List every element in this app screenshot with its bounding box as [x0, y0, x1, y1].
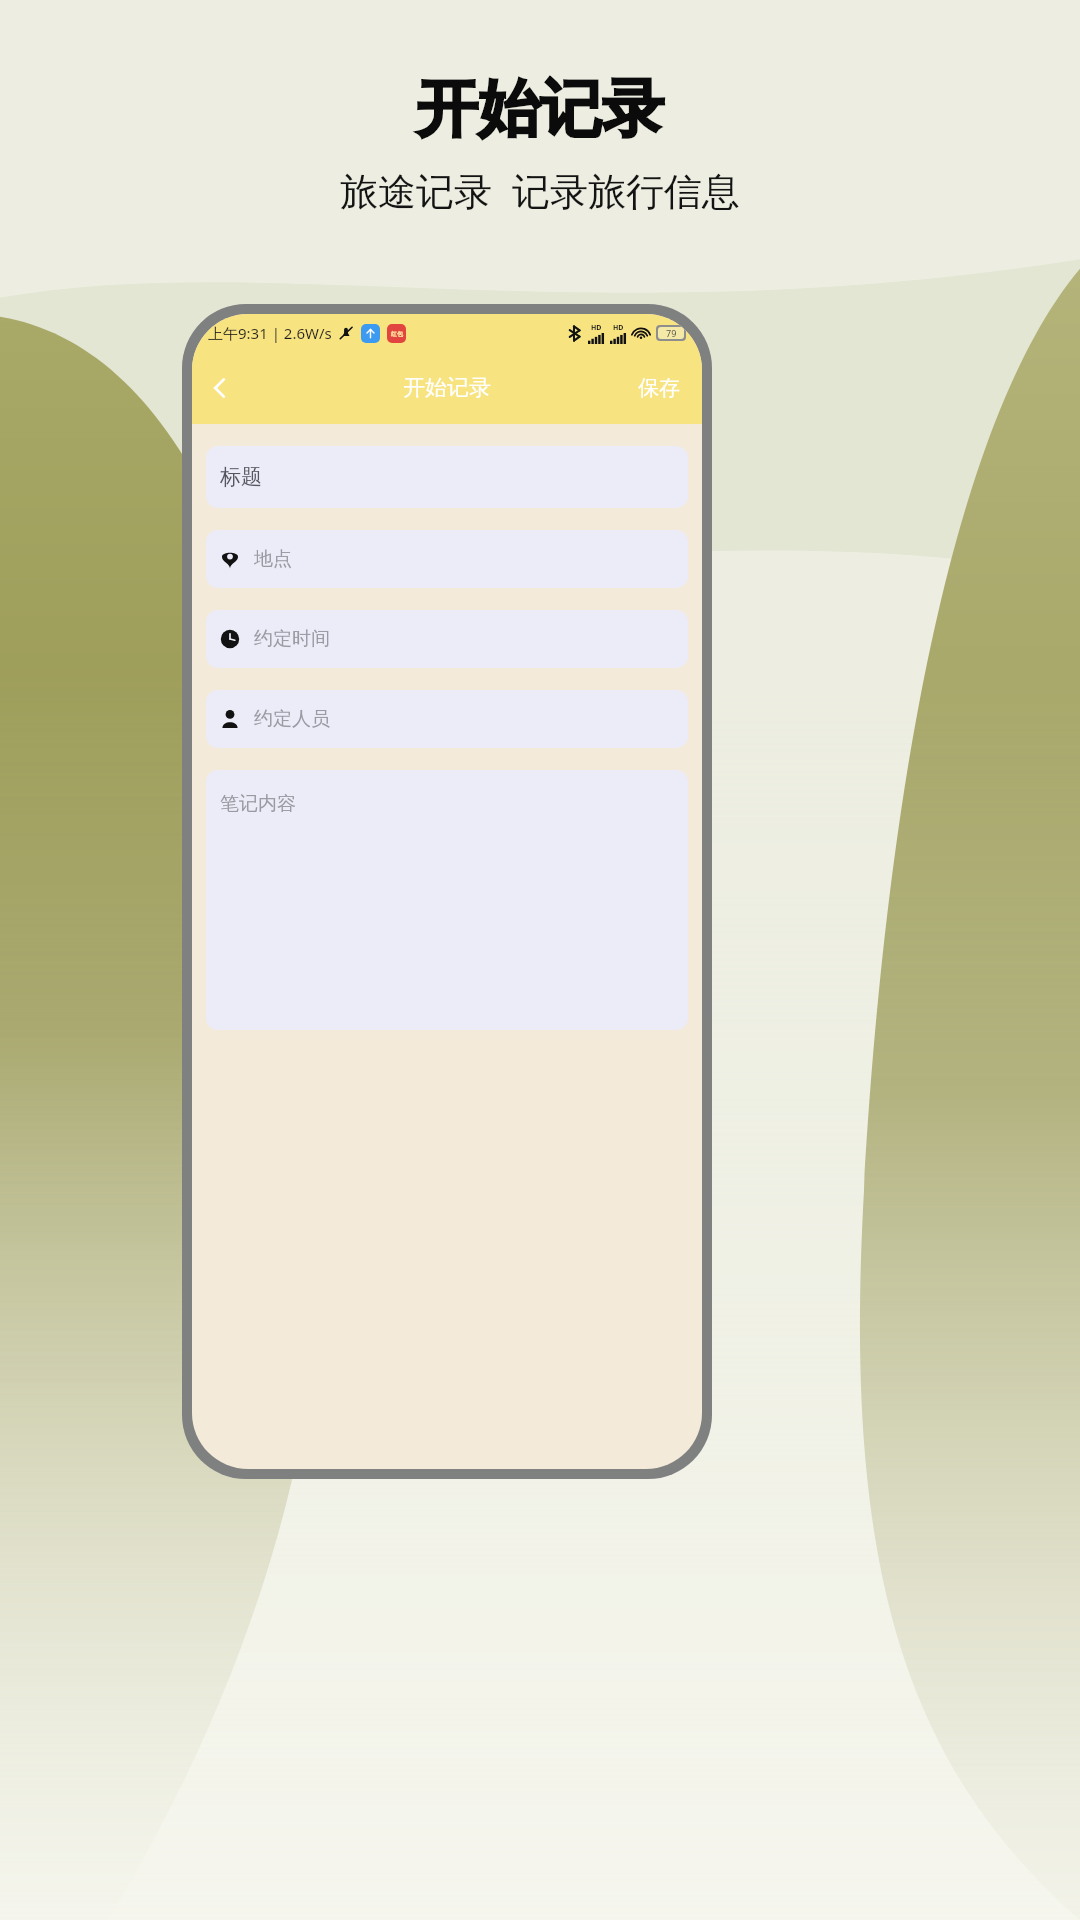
button[interactable]: 返回: [192, 360, 248, 416]
button[interactable]: 保存: [616, 359, 702, 417]
staticText: HD: [591, 323, 602, 333]
staticText: HD: [613, 323, 624, 333]
staticText: 保存: [638, 375, 680, 401]
button[interactable]: 约定人员: [206, 690, 688, 748]
staticText: 笔记内容: [220, 792, 296, 816]
button[interactable]: 标题: [206, 446, 688, 508]
staticText: 旅途记录 记录旅行信息: [0, 164, 1080, 216]
staticText: 约定时间: [254, 627, 330, 651]
staticText: 地点: [254, 547, 292, 571]
staticText: 上午9:31 | 2.6W/s: [208, 323, 332, 343]
staticText: 标题: [220, 464, 262, 490]
staticText: 约定人员: [254, 707, 330, 731]
staticText: 开始记录: [403, 374, 491, 402]
button[interactable]: 笔记内容: [206, 770, 688, 1030]
staticText: 79: [666, 327, 677, 339]
staticText: 开始记录: [0, 70, 1080, 148]
staticText: 红包: [391, 330, 403, 338]
button[interactable]: 地点: [206, 530, 688, 588]
button[interactable]: 约定时间: [206, 610, 688, 668]
